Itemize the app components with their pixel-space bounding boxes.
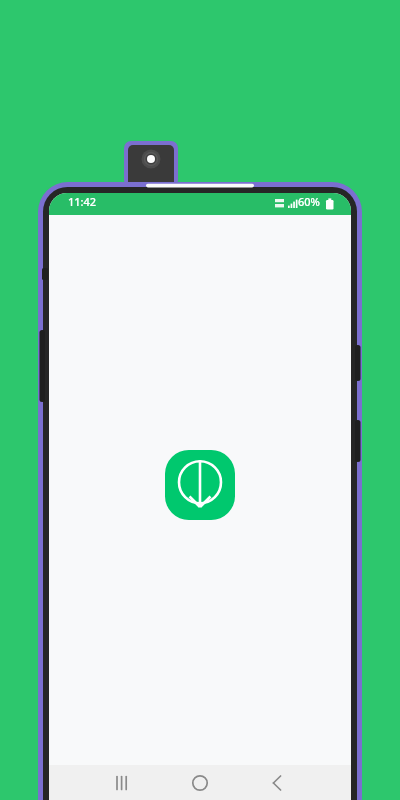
button[interactable]: Download <box>165 450 235 520</box>
staticText: 11:42 <box>68 194 97 209</box>
staticText: 60% <box>298 194 320 209</box>
